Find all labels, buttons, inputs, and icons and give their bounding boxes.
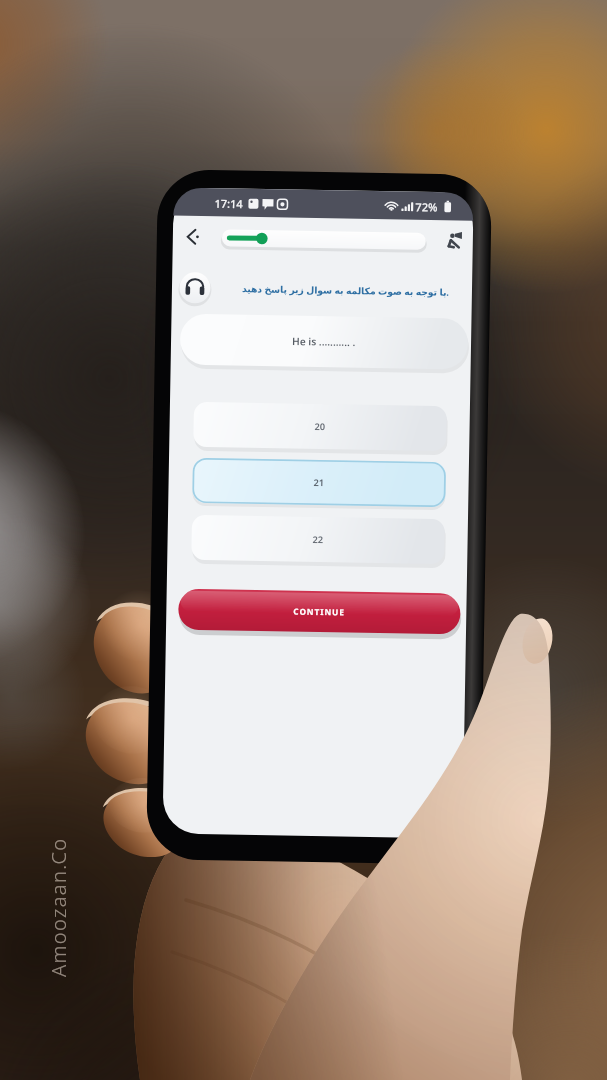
button[interactable] (190, 400, 446, 448)
button[interactable]: Back (172, 203, 212, 237)
button[interactable] (178, 587, 464, 635)
button[interactable] (190, 457, 446, 505)
button[interactable]: Play audio (173, 272, 209, 308)
button[interactable] (190, 513, 446, 561)
button[interactable]: Report a problem (438, 208, 474, 242)
